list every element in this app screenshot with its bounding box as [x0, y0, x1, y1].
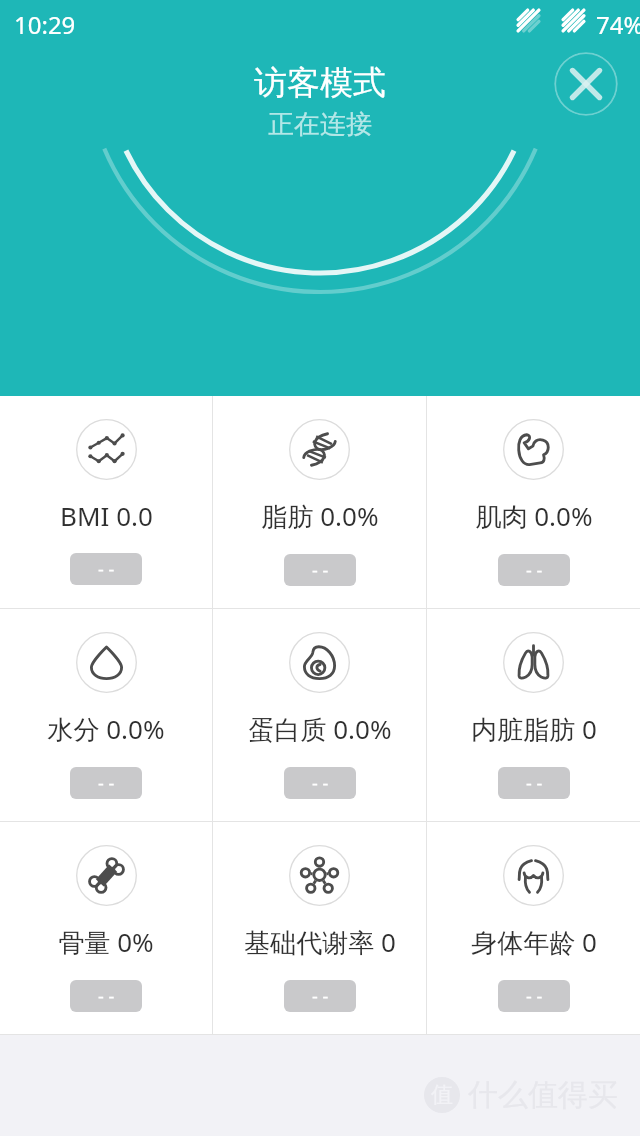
- other: Signal: [516, 8, 541, 33]
- staticText: - -: [312, 984, 329, 1009]
- staticText: - -: [526, 984, 543, 1009]
- staticText: - -: [526, 558, 543, 583]
- staticText: 水分 0.0%: [47, 711, 165, 747]
- staticText: 肌肉 0.0%: [475, 498, 593, 534]
- staticText: 内脏脂肪 0: [471, 711, 597, 747]
- button[interactable]: 肌肉 0.0%: [427, 396, 640, 608]
- staticText: - -: [98, 557, 115, 582]
- button[interactable]: BMI 0.0: [0, 396, 212, 608]
- staticText: - -: [312, 771, 329, 796]
- button[interactable]: 身体年龄 0: [427, 822, 640, 1034]
- button[interactable]: 基础代谢率 0: [213, 822, 426, 1034]
- staticText: 访客模式: [254, 62, 386, 104]
- staticText: 基础代谢率 0: [244, 924, 396, 960]
- staticText: - -: [98, 984, 115, 1009]
- staticText: 什么值得买: [468, 1076, 618, 1114]
- staticText: 值: [431, 1081, 453, 1109]
- staticText: - -: [526, 771, 543, 796]
- button[interactable]: Close: [554, 52, 618, 116]
- staticText: 正在连接: [268, 108, 372, 141]
- staticText: - -: [98, 771, 115, 796]
- staticText: 蛋白质 0.0%: [248, 711, 392, 747]
- other: Signal: [561, 8, 586, 33]
- staticText: 身体年龄 0: [471, 924, 597, 960]
- staticText: 骨量 0%: [58, 924, 154, 960]
- staticText: 10:29: [14, 8, 76, 41]
- button[interactable]: 蛋白质 0.0%: [213, 609, 426, 821]
- staticText: - -: [312, 558, 329, 583]
- button[interactable]: 脂肪 0.0%: [213, 396, 426, 608]
- button[interactable]: 骨量 0%: [0, 822, 212, 1034]
- button[interactable]: 水分 0.0%: [0, 609, 212, 821]
- staticText: 74%: [596, 8, 640, 41]
- staticText: 脂肪 0.0%: [261, 498, 379, 534]
- button[interactable]: 内脏脂肪 0: [427, 609, 640, 821]
- staticText: BMI 0.0: [60, 498, 153, 533]
